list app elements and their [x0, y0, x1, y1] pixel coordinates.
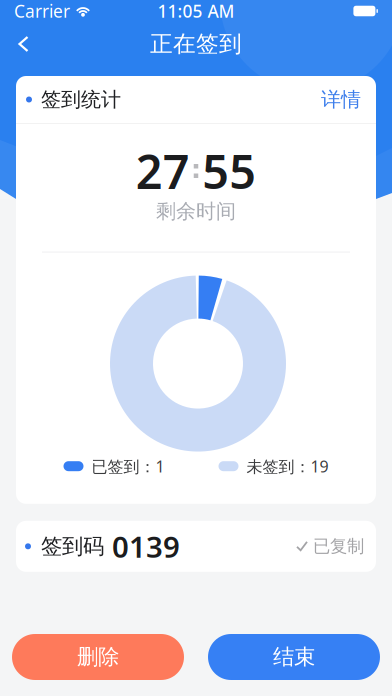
staticText: 签到统计 — [41, 87, 121, 112]
staticText: 正在签到 — [150, 30, 242, 58]
button[interactable]: Back — [0, 24, 29, 64]
staticText: Carrier — [14, 0, 70, 22]
staticText: 已复制 — [313, 536, 364, 557]
staticText: 剩余时间 — [156, 199, 236, 224]
button[interactable]: 删除 — [12, 634, 184, 680]
button[interactable]: 已复制 — [296, 536, 364, 557]
staticText: 已签到：1 — [91, 456, 164, 477]
staticText: 结束 — [273, 644, 315, 670]
staticText: 27 — [136, 140, 190, 202]
staticText: 11:05 AM — [157, 0, 234, 22]
staticText: 55 — [202, 140, 256, 202]
staticText: 详情 — [321, 87, 361, 112]
staticText: 0139 — [112, 527, 180, 566]
button[interactable]: 结束 — [208, 634, 380, 680]
staticText: 删除 — [77, 644, 119, 670]
staticText: 未签到：19 — [246, 456, 328, 477]
button[interactable]: 详情 — [321, 87, 361, 112]
staticText: 签到码 — [41, 533, 104, 559]
